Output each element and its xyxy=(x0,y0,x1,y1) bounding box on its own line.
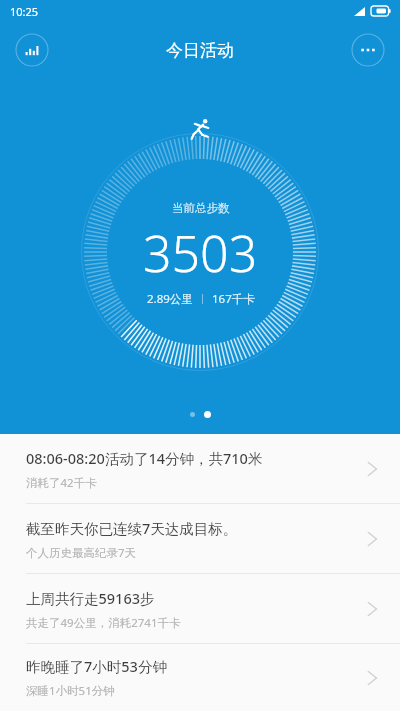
staticText: 08:06-08:20活动了14分钟，共710米 xyxy=(26,448,263,468)
button[interactable]: 统计 xyxy=(15,33,49,67)
staticText: 深睡1小时51分钟 xyxy=(26,683,115,699)
staticText: 上周共行走59163步 xyxy=(26,588,155,608)
staticText: 共走了49公里，消耗2741千卡 xyxy=(26,615,181,631)
staticText: 个人历史最高纪录7天 xyxy=(26,545,137,561)
button[interactable]: 上周共行走59163步 xyxy=(0,574,400,644)
staticText: 消耗了42千卡 xyxy=(26,475,97,491)
staticText: 167千卡 xyxy=(212,291,255,307)
staticText: 截至昨天你已连续7天达成目标。 xyxy=(26,518,238,538)
staticText: 昨晚睡了7小时53分钟 xyxy=(26,656,167,676)
button[interactable]: 更多 xyxy=(351,33,385,67)
staticText: 今日活动 xyxy=(166,40,234,61)
button[interactable]: 08:06-08:20活动了14分钟，共710米 xyxy=(0,434,400,504)
staticText: 当前总步数 xyxy=(172,201,230,215)
button[interactable]: 截至昨天你已连续7天达成目标。 xyxy=(0,504,400,574)
button[interactable]: 昨晚睡了7小时53分钟 xyxy=(0,644,400,711)
staticText: 3503 xyxy=(143,219,258,287)
staticText: 10:25 xyxy=(10,4,39,19)
staticText: 2.89公里 xyxy=(147,291,193,307)
